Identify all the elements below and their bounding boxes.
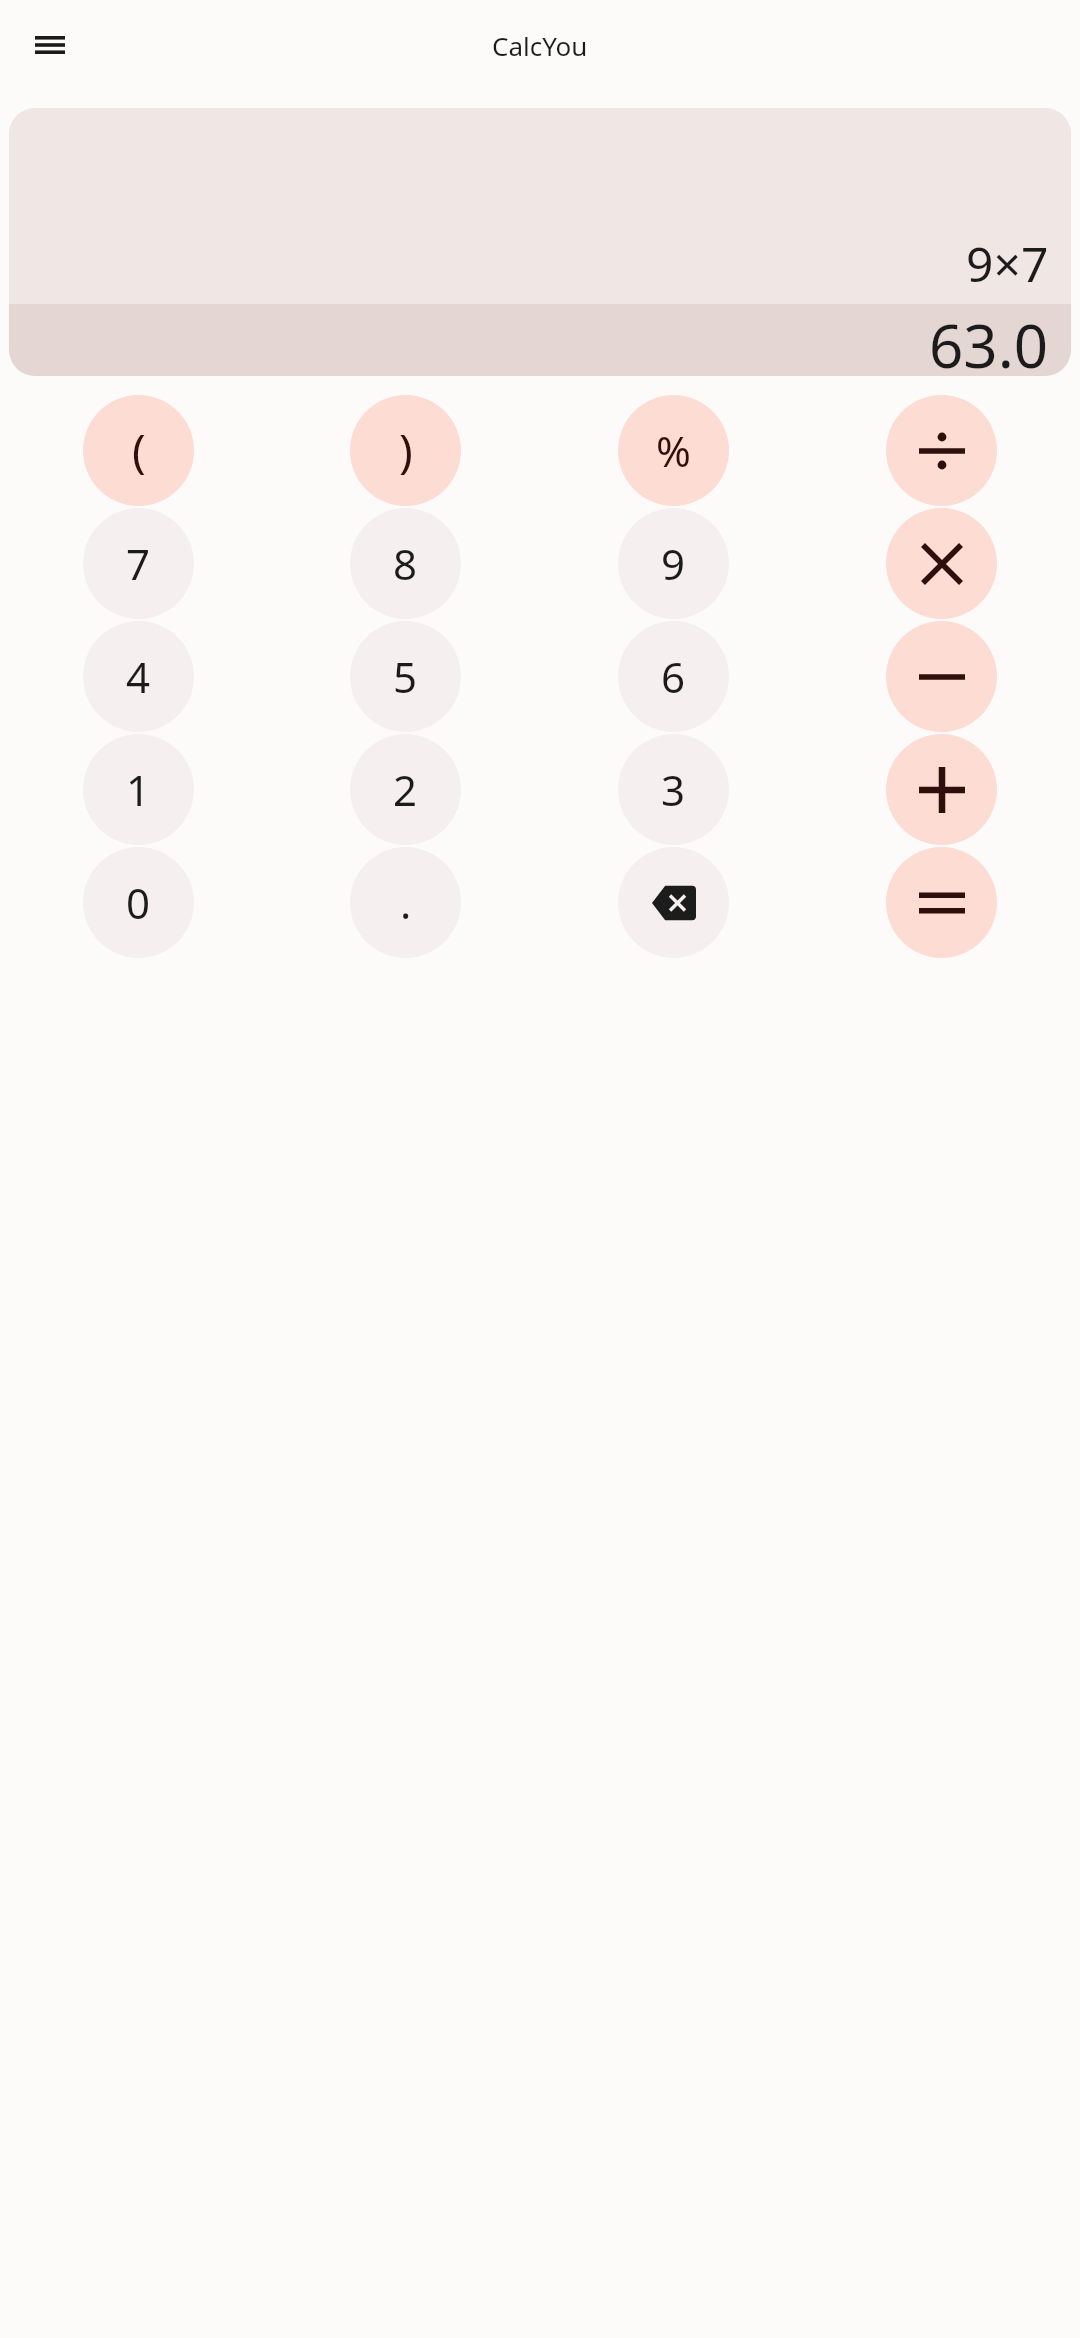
button[interactable]: % [618,395,729,506]
button[interactable]: Backspace [618,847,729,958]
button[interactable]: 2 [350,734,461,845]
button[interactable]: Add [886,734,997,845]
staticText: 2 [393,761,418,818]
button[interactable]: 9×7 [9,108,1071,376]
button[interactable]: 8 [350,508,461,619]
button[interactable]: . [350,847,461,958]
staticText: 9×7 [966,231,1049,296]
staticText: CalcYou [492,28,588,63]
button[interactable]: 1 [83,734,194,845]
button[interactable]: 6 [618,621,729,732]
button[interactable]: ( [83,395,194,506]
staticText: 63.0 [929,304,1049,376]
staticText: . [400,874,412,931]
button[interactable]: Multiply [886,508,997,619]
staticText: 5 [393,648,418,705]
button[interactable]: 7 [83,508,194,619]
staticText: 6 [661,648,686,705]
staticText: 0 [126,874,151,931]
button[interactable]: 4 [83,621,194,732]
button[interactable]: Menu [22,17,78,73]
staticText: 7 [126,535,151,592]
staticText: ) [399,419,413,482]
button[interactable]: 3 [618,734,729,845]
staticText: ( [132,419,146,482]
button[interactable]: 0 [83,847,194,958]
button[interactable]: Divide [886,395,997,506]
button[interactable]: 9 [618,508,729,619]
staticText: 1 [126,761,151,818]
staticText: 9 [661,535,686,592]
button[interactable]: Equals [886,847,997,958]
staticText: 3 [661,761,686,818]
staticText: 8 [393,535,418,592]
button[interactable]: Subtract [886,621,997,732]
button[interactable]: 5 [350,621,461,732]
staticText: % [656,422,691,479]
button[interactable]: ) [350,395,461,506]
staticText: 4 [126,648,151,705]
